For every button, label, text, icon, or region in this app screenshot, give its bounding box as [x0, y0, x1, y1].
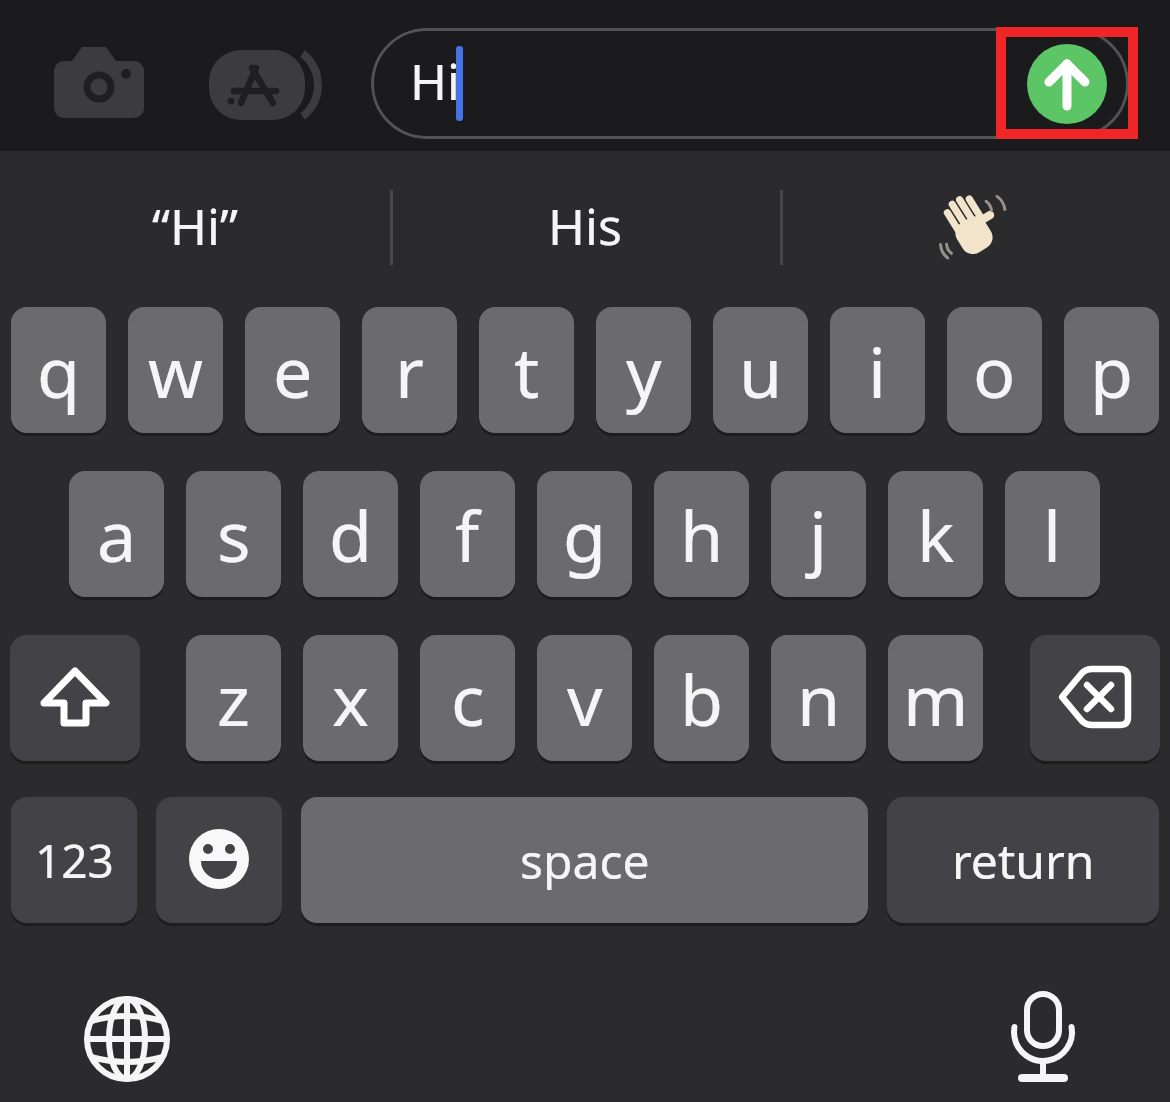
- button[interactable]: o: [947, 307, 1042, 433]
- button[interactable]: [993, 984, 1093, 1094]
- staticText: “Hi”: [152, 192, 238, 260]
- button[interactable]: [77, 989, 177, 1089]
- button[interactable]: k: [888, 471, 983, 597]
- button[interactable]: u: [713, 307, 808, 433]
- staticText: u: [739, 323, 783, 418]
- button[interactable]: r: [362, 307, 457, 433]
- button[interactable]: x: [303, 635, 398, 761]
- button[interactable]: [1030, 635, 1160, 761]
- button[interactable]: v: [537, 635, 632, 761]
- staticText: s: [217, 487, 251, 582]
- button[interactable]: f: [420, 471, 515, 597]
- button[interactable]: [1027, 44, 1107, 124]
- staticText: 123: [35, 829, 114, 892]
- staticText: r: [395, 323, 424, 418]
- button[interactable]: b: [654, 635, 749, 761]
- staticText: e: [273, 323, 313, 418]
- button[interactable]: [780, 151, 1170, 301]
- staticText: c: [451, 651, 485, 746]
- staticText: i: [868, 323, 887, 418]
- button[interactable]: j: [771, 471, 866, 597]
- staticText: Hi: [410, 47, 460, 115]
- button[interactable]: return: [887, 797, 1159, 923]
- staticText: h: [680, 487, 724, 582]
- staticText: n: [797, 651, 841, 746]
- button[interactable]: h: [654, 471, 749, 597]
- staticText: t: [514, 323, 540, 418]
- button[interactable]: d: [303, 471, 398, 597]
- staticText: m: [903, 651, 969, 746]
- button[interactable]: [205, 46, 320, 124]
- button[interactable]: e: [245, 307, 340, 433]
- button[interactable]: t: [479, 307, 574, 433]
- button[interactable]: [10, 635, 140, 761]
- staticText: p: [1090, 323, 1134, 418]
- staticText: q: [37, 323, 81, 418]
- staticText: d: [329, 487, 373, 582]
- button[interactable]: [44, 40, 164, 130]
- staticText: o: [973, 323, 1016, 418]
- staticText: g: [563, 487, 607, 582]
- staticText: x: [332, 651, 370, 746]
- button[interactable]: “Hi”: [0, 151, 390, 301]
- button[interactable]: i: [830, 307, 925, 433]
- button[interactable]: n: [771, 635, 866, 761]
- button[interactable]: q: [11, 307, 106, 433]
- button[interactable]: His: [390, 151, 780, 301]
- staticText: space: [520, 828, 650, 893]
- staticText: v: [567, 651, 603, 746]
- button[interactable]: l: [1005, 471, 1100, 597]
- button[interactable]: y: [596, 307, 691, 433]
- button[interactable]: z: [186, 635, 281, 761]
- staticText: His: [548, 192, 622, 260]
- staticText: w: [148, 323, 204, 418]
- button[interactable]: m: [888, 635, 983, 761]
- button[interactable]: s: [186, 471, 281, 597]
- staticText: j: [809, 487, 828, 582]
- staticText: return: [952, 828, 1095, 893]
- button[interactable]: g: [537, 471, 632, 597]
- staticText: k: [917, 487, 955, 582]
- staticText: b: [680, 651, 724, 746]
- staticText: f: [455, 487, 480, 582]
- button[interactable]: 123: [11, 797, 137, 923]
- button[interactable]: [156, 797, 282, 923]
- button[interactable]: w: [128, 307, 223, 433]
- button[interactable]: a: [69, 471, 164, 597]
- staticText: l: [1043, 487, 1062, 582]
- button[interactable]: space: [301, 797, 868, 923]
- staticText: z: [217, 651, 250, 746]
- button[interactable]: c: [420, 635, 515, 761]
- button[interactable]: p: [1064, 307, 1159, 433]
- staticText: y: [626, 323, 662, 418]
- button[interactable]: [371, 28, 1129, 139]
- staticText: a: [97, 487, 137, 582]
